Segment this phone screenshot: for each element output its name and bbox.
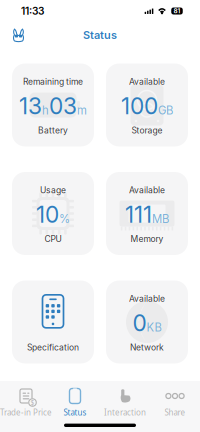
staticText: 10 (36, 201, 59, 228)
staticText: Usage (40, 185, 66, 195)
staticText: Remaining time (23, 76, 83, 87)
staticText: 13 (19, 92, 42, 120)
button[interactable]: Status (50, 381, 100, 422)
staticText: KB (146, 320, 161, 334)
staticText: m (77, 103, 87, 117)
staticText: Available (129, 76, 165, 87)
staticText: Memory (130, 234, 163, 244)
staticText: % (59, 212, 70, 226)
staticText: Specification (27, 342, 79, 352)
staticText: Trade-in Price (0, 407, 52, 418)
staticText: Battery (38, 125, 68, 135)
staticText: Network (130, 342, 164, 352)
staticText: $ (30, 398, 34, 407)
staticText: 81 (173, 7, 180, 15)
staticText: 100 (121, 92, 158, 120)
staticText: h (42, 103, 49, 117)
button[interactable]: Remaining time (12, 63, 94, 146)
button[interactable]: $ (0, 381, 50, 422)
button[interactable]: Interaction (100, 381, 150, 422)
staticText: Status (63, 407, 86, 418)
staticText: Status (83, 28, 117, 42)
staticText: MB (152, 212, 169, 226)
button[interactable]: Specification (12, 280, 94, 363)
staticText: Share (164, 407, 185, 418)
staticText: Available (129, 185, 165, 195)
staticText: 03 (49, 92, 77, 120)
button[interactable]: Available (106, 63, 188, 146)
staticText: 11:33 (21, 5, 44, 17)
staticText: Interaction (104, 407, 146, 418)
staticText: Storage (131, 125, 162, 135)
staticText: GB (158, 103, 173, 117)
button[interactable]: Available (106, 172, 188, 255)
staticText: CPU (44, 234, 61, 244)
button[interactable]: Available (106, 280, 188, 363)
button[interactable]: Usage (12, 172, 94, 255)
staticText: 0 (132, 309, 146, 337)
staticText: 111 (125, 201, 152, 228)
button[interactable]: Share (150, 381, 200, 422)
staticText: Available (129, 293, 165, 304)
button[interactable]: App menu (4, 24, 33, 45)
